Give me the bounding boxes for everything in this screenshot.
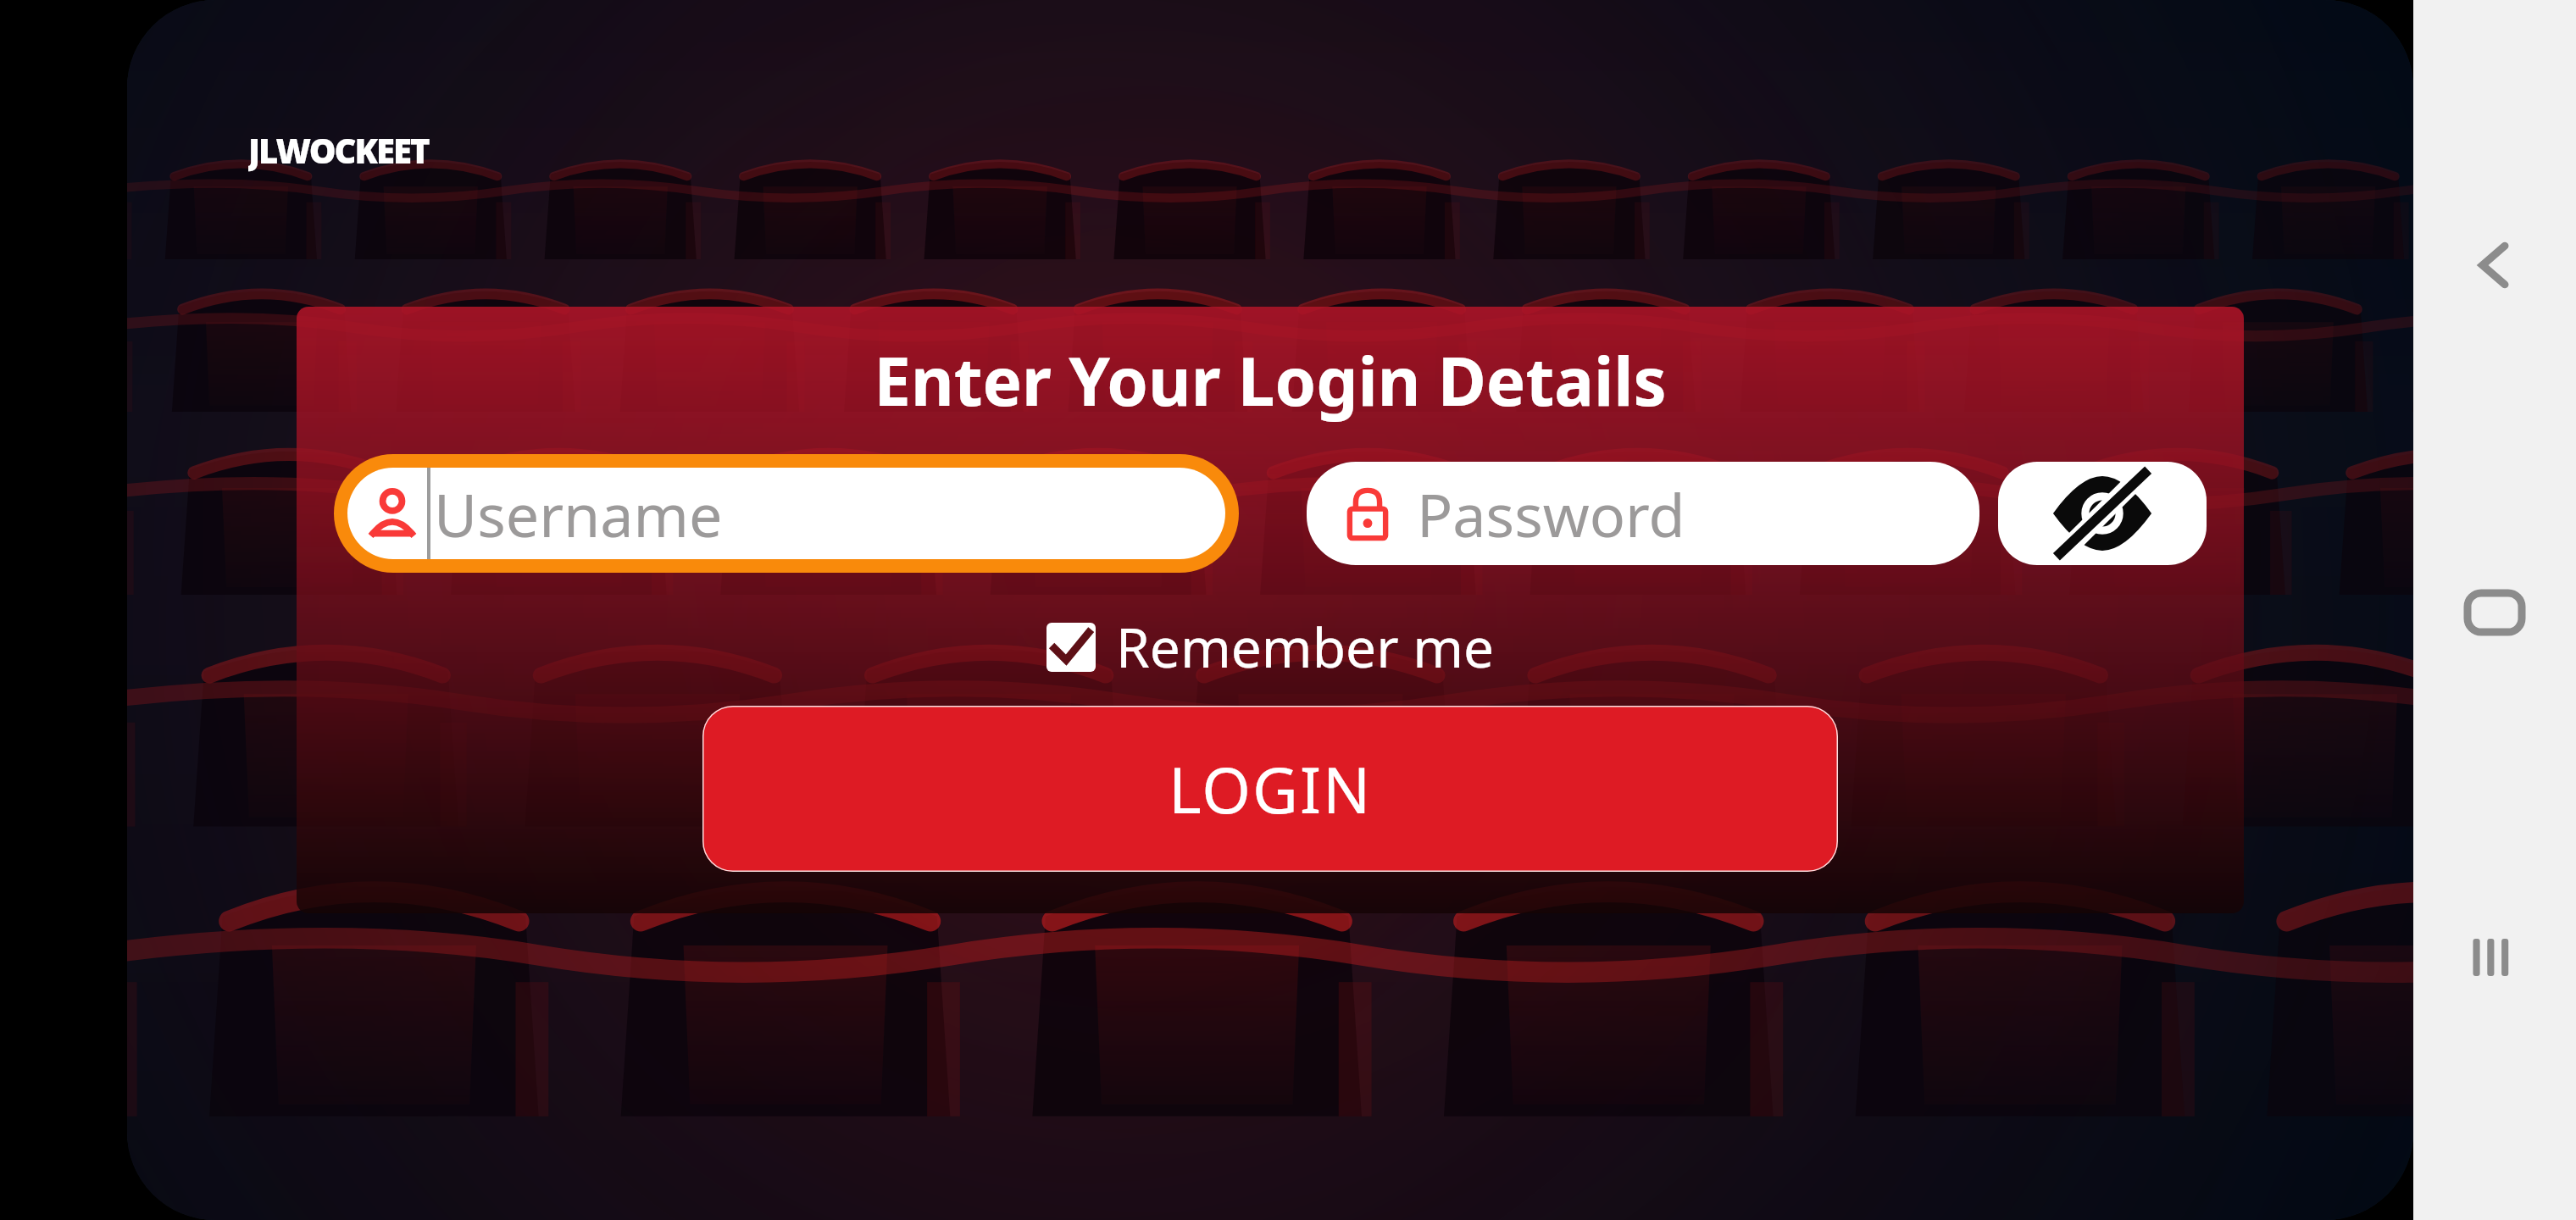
staticText: Username (434, 474, 723, 554)
button[interactable]: Password (1307, 462, 1979, 565)
staticText: Password (1417, 474, 1685, 554)
staticText: LOGIN (1169, 746, 1373, 832)
button[interactable]: Remember me checkbox (1040, 607, 1502, 687)
staticText: Remember me (1116, 610, 1495, 684)
button[interactable]: Remember me checkbox (1046, 623, 1096, 672)
button[interactable]: Home (2452, 570, 2537, 655)
button[interactable]: Show password (1998, 462, 2207, 565)
button[interactable]: Recent apps (2452, 915, 2537, 1000)
staticText: JLWOCKEETV (248, 127, 443, 183)
button[interactable]: Back (2452, 223, 2537, 308)
button[interactable]: Username (334, 454, 1239, 573)
staticText: Enter Your Login Details (874, 335, 1667, 425)
button[interactable]: LOGIN (702, 706, 1838, 872)
